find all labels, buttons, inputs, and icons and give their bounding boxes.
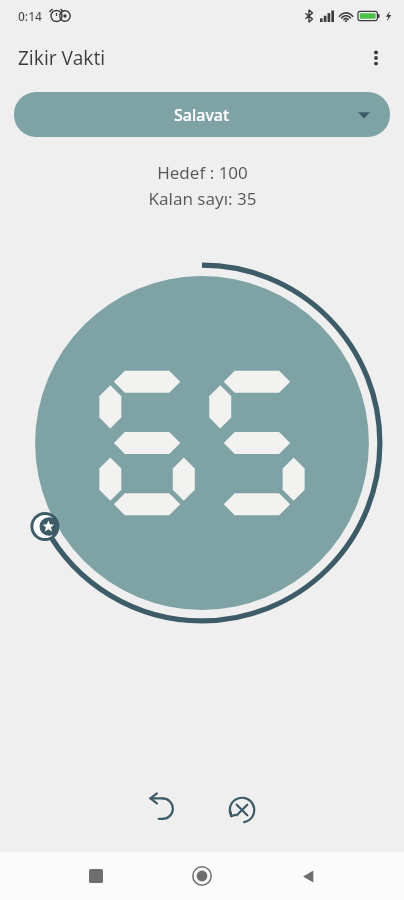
button[interactable]: Counter, 65: [19, 260, 385, 626]
button[interactable]: Salavat: [14, 92, 390, 137]
button[interactable]: More options: [354, 36, 398, 80]
button[interactable]: Recent apps: [72, 852, 120, 900]
staticText: 0:14: [18, 8, 42, 24]
staticText: Kalan sayı: 35: [148, 187, 257, 210]
button[interactable]: Reset: [214, 782, 270, 838]
staticText: Salavat: [174, 104, 230, 126]
button[interactable]: Back: [284, 852, 332, 900]
staticText: Zikir Vakti: [18, 45, 106, 71]
button[interactable]: Home: [178, 852, 226, 900]
button[interactable]: Undo: [134, 782, 190, 838]
staticText: Hedef : 100: [157, 161, 248, 184]
